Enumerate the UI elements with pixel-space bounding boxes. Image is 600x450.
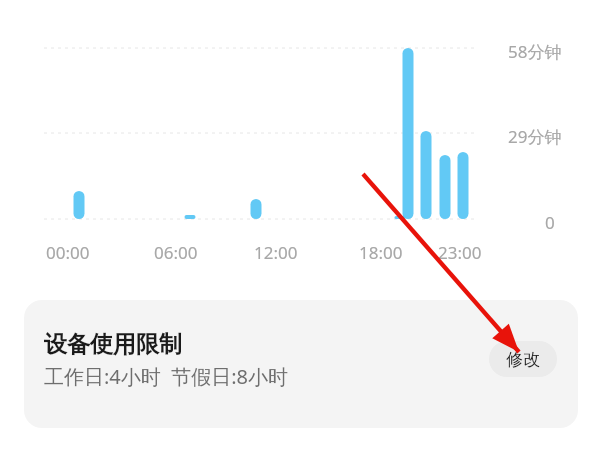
staticText: 设备使用限制 (44, 330, 182, 359)
staticText: 58分钟 (508, 40, 562, 63)
staticText: 00:00 (46, 241, 90, 264)
staticText: 工作日:4小时 节假日:8小时 (44, 363, 288, 390)
staticText: 06:00 (154, 241, 198, 264)
button[interactable]: 修改 (489, 341, 557, 377)
staticText: 29分钟 (508, 125, 562, 148)
staticText: 0 (545, 211, 555, 234)
staticText: 修改 (506, 349, 540, 370)
staticText: 23:00 (438, 241, 482, 264)
staticText: 12:00 (254, 241, 298, 264)
button[interactable]: 设备使用限制 (24, 300, 578, 428)
staticText: 18:00 (359, 241, 403, 264)
